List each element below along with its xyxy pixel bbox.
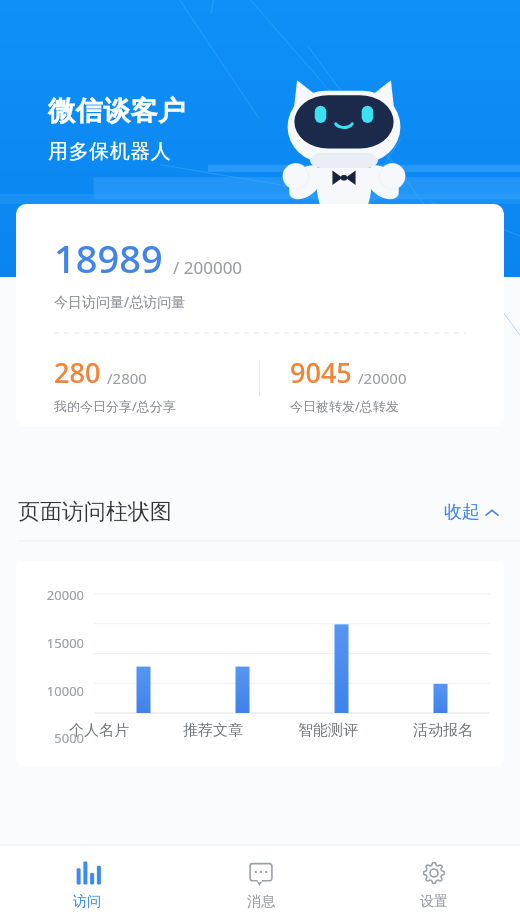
button[interactable]: 消息 xyxy=(174,846,347,924)
staticText: 用多保机器人 xyxy=(48,139,171,164)
button[interactable]: 访问 xyxy=(0,846,174,924)
staticText: 5000 xyxy=(22,729,84,747)
staticText: 推荐文章 xyxy=(183,721,243,740)
staticText: 个人名片 xyxy=(69,721,129,740)
staticText: /2800 xyxy=(107,368,147,388)
staticText: 微信谈客户 xyxy=(48,94,186,128)
staticText: / 200000 xyxy=(173,256,243,279)
staticText: 9045 xyxy=(290,354,352,391)
staticText: 智能测评 xyxy=(298,721,358,740)
staticText: 页面访问柱状图 xyxy=(18,498,172,526)
staticText: 今日被转发/总转发 xyxy=(290,397,399,415)
staticText: 访问 xyxy=(73,893,101,911)
staticText: 20000 xyxy=(22,586,84,604)
staticText: 280 xyxy=(54,354,101,391)
staticText: 活动报名 xyxy=(413,721,473,740)
button[interactable]: 收起 xyxy=(440,495,502,530)
staticText: 我的今日分享/总分享 xyxy=(54,397,176,415)
staticText: 10000 xyxy=(22,682,84,700)
staticText: 18989 xyxy=(54,232,163,284)
button[interactable]: 设置 xyxy=(347,846,520,924)
staticText: 15000 xyxy=(22,634,84,652)
staticText: 设置 xyxy=(420,893,448,911)
staticText: /20000 xyxy=(358,368,407,388)
staticText: 今日访问量/总访问量 xyxy=(54,292,186,311)
staticText: 收起 xyxy=(444,501,480,524)
staticText: 消息 xyxy=(247,893,275,911)
